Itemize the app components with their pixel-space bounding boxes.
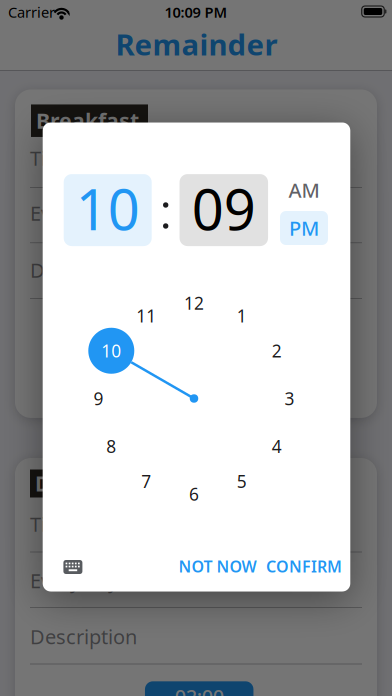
button[interactable]: 10: [88, 328, 134, 374]
staticText: 10: [101, 339, 121, 362]
button[interactable]: 9: [81, 381, 115, 415]
staticText: 1: [237, 304, 247, 327]
staticText: Carrier: [8, 2, 55, 22]
staticText: PM: [289, 215, 319, 241]
staticText: Description: [30, 257, 137, 283]
staticText: 8: [106, 435, 116, 458]
button[interactable]: Hour: [64, 173, 152, 247]
button[interactable]: 5: [225, 464, 259, 498]
button[interactable]: AM: [280, 173, 328, 207]
staticText: Every day: [30, 567, 118, 594]
button[interactable]: CONFIRM: [258, 548, 350, 584]
staticText: 11: [136, 304, 156, 327]
staticText: Every day: [30, 200, 118, 226]
staticText: 02:00: [175, 683, 224, 696]
button[interactable]: 6: [177, 477, 211, 511]
staticText: 9: [93, 387, 103, 410]
button[interactable]: 7: [129, 464, 163, 498]
staticText: 09: [192, 171, 256, 246]
button[interactable]: 1: [225, 299, 259, 333]
button[interactable]: 4: [260, 429, 294, 463]
button[interactable]: 8: [94, 429, 128, 463]
staticText: Dinner: [35, 469, 108, 497]
staticText: 7: [141, 470, 151, 493]
staticText: Title: [30, 511, 69, 537]
staticText: 10: [76, 171, 140, 246]
staticText: 3: [284, 387, 294, 410]
button[interactable]: NOT NOW: [170, 548, 266, 584]
staticText: AM: [288, 177, 319, 203]
staticText: 4: [272, 435, 282, 458]
staticText: NOT NOW: [179, 556, 257, 577]
staticText: CONFIRM: [266, 556, 342, 577]
staticText: 10:09 PM: [164, 2, 227, 22]
button[interactable]: PM: [280, 211, 328, 245]
button[interactable]: 12: [177, 286, 211, 320]
staticText: 5: [237, 470, 247, 493]
staticText: 12: [184, 291, 204, 314]
button[interactable]: 2: [260, 334, 294, 368]
button[interactable]: 3: [272, 381, 306, 415]
button[interactable]: Switch to keyboard input: [61, 558, 85, 576]
staticText: Description: [30, 623, 137, 650]
staticText: Title: [30, 145, 69, 171]
staticText: Breakfast: [36, 106, 139, 135]
staticText: Remainder: [115, 24, 277, 63]
staticText: 6: [189, 482, 199, 505]
button[interactable]: Minute: [180, 173, 268, 247]
staticText: 2: [272, 339, 282, 362]
button[interactable]: 11: [129, 299, 163, 333]
button[interactable]: 02:00: [145, 681, 253, 696]
